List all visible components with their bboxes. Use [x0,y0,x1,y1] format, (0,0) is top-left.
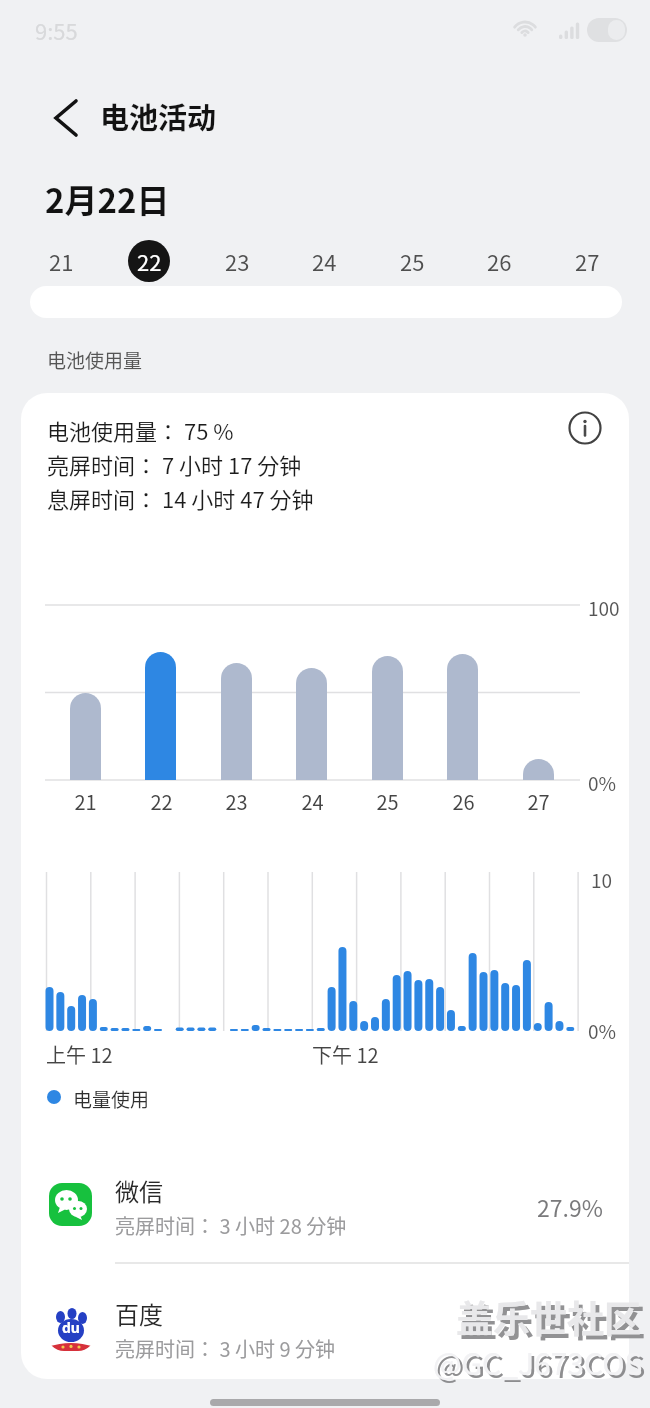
button[interactable] [35,1290,629,1376]
staticText: 26 [487,245,512,277]
staticText: 上午 12 [46,1040,113,1069]
staticText: 2月22日 [45,175,170,223]
staticText: 21 [74,787,97,816]
staticText: du [62,1318,80,1337]
staticText: 21 [49,245,74,277]
button[interactable]: 23 [216,240,258,282]
staticText: 百度 [115,1296,163,1331]
staticText: 盖乐世社区 [460,1294,645,1348]
staticText: 微信 [115,1173,163,1208]
button[interactable]: 22 [128,240,170,282]
staticText: 22 [137,245,162,277]
button[interactable]: 25 [391,240,433,282]
staticText: 26 [452,787,475,816]
staticText: 亮屏时间： 3 小时 28 分钟 [115,1211,347,1240]
staticText: 亮屏时间： 3 小时 9 分钟 [115,1334,336,1363]
staticText: 23 [225,245,250,277]
staticText: 下午 12 [312,1040,379,1069]
staticText: 23 [225,787,248,816]
staticText: 电量使用 [73,1085,150,1113]
button[interactable] [41,94,89,142]
staticText: 0% [588,1017,617,1045]
button[interactable] [567,410,603,446]
staticText: @GC_J673COS [433,1340,643,1383]
button[interactable] [35,1172,629,1258]
staticText: 24 [312,245,337,277]
staticText: @GC_J673COS [436,1343,646,1386]
button[interactable]: 27 [566,240,608,282]
staticText: 27.9% [537,1190,603,1223]
staticText: 9:55 [35,14,78,46]
button[interactable]: 24 [303,240,345,282]
button[interactable]: 21 [40,240,82,282]
button[interactable]: 26 [478,240,520,282]
staticText: 27 [575,245,600,277]
staticText: 0% [588,769,617,797]
staticText: 电池活动 [100,95,217,137]
staticText: 25 [400,245,425,277]
staticText: 盖乐世社区 [456,1290,641,1344]
staticText: 24 [301,787,324,816]
staticText: 100 [588,594,620,622]
staticText: 22 [150,787,173,816]
staticText: 电池使用量 [47,346,143,374]
staticText: 亮屏时间： 7 小时 17 分钟 [47,448,302,480]
staticText: 25 [376,787,399,816]
staticText: 27 [527,787,550,816]
staticText: 10 [591,866,613,894]
staticText: 电池使用量： 75 % [47,414,234,446]
staticText: 息屏时间： 14 小时 47 分钟 [47,482,314,514]
